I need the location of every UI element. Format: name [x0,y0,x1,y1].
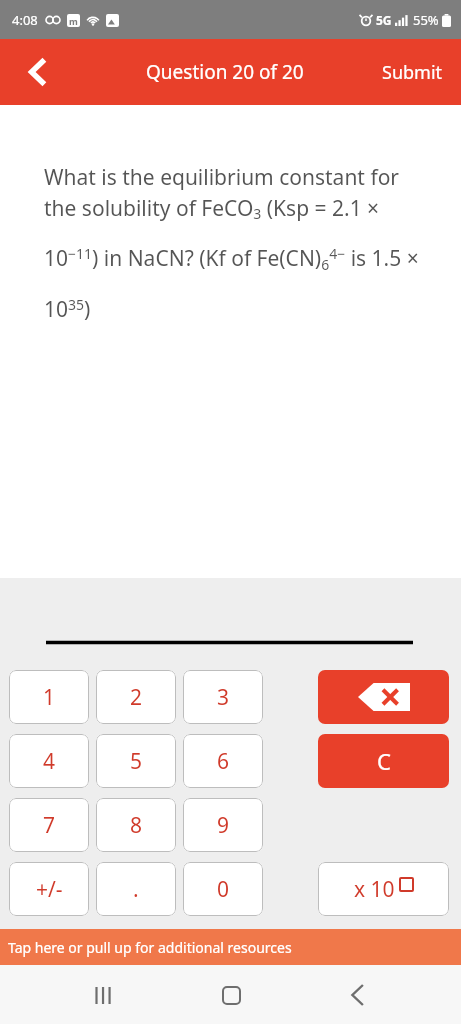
staticText: x 10 [354,875,395,904]
staticText: 4 [43,747,56,776]
button[interactable]: 5 [96,734,176,788]
staticText: 2 [130,683,143,712]
staticText: 5G [376,12,392,28]
button[interactable]: 8 [96,798,176,852]
staticText: Submit [382,60,443,85]
button[interactable]: Back [334,971,382,1019]
button[interactable]: . [96,862,176,916]
button[interactable]: Backspace [318,670,449,724]
button[interactable]: 4 [9,734,89,788]
staticText: 0 [217,875,230,904]
button[interactable]: C [318,734,449,788]
button[interactable]: 6 [183,734,263,788]
button[interactable]: Home [207,971,255,1019]
button[interactable]: 2 [96,670,176,724]
button[interactable]: 1 [9,670,89,724]
button[interactable]: Recents [79,971,127,1019]
button[interactable]: 0 [183,862,263,916]
staticText: 8 [130,811,143,840]
staticText: 5 [130,747,143,776]
button[interactable]: 3 [183,670,263,724]
staticText: . [133,875,139,904]
button[interactable]: 9 [183,798,263,852]
staticText: 55% [413,11,439,29]
staticText: 3 [217,683,230,712]
staticText: m [69,15,78,27]
button[interactable]: Back [12,46,64,98]
staticText: 1 [43,683,56,712]
staticText: Tap here or pull up for additional resou… [8,938,292,957]
staticText: C [377,746,391,776]
staticText: 7 [43,811,56,840]
staticText: Question 20 of 20 [146,59,304,85]
staticText: 9 [217,811,230,840]
button[interactable]: Tap here or pull up for additional resou… [0,929,461,965]
staticText: 6 [217,747,230,776]
staticText: +/- [36,875,63,904]
button[interactable]: Times ten to the power [318,862,449,916]
button[interactable]: 7 [9,798,89,852]
button[interactable]: Submit [374,50,451,95]
staticText: What is the equilibrium constant for the… [44,163,425,323]
button[interactable]: +/- [9,862,89,916]
staticText: 4:08 [12,11,38,29]
